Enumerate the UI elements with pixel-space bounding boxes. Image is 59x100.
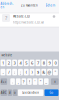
button[interactable]: ? [21, 78, 26, 85]
button[interactable]: 4 [18, 60, 23, 66]
button[interactable]: - [0, 69, 5, 75]
button[interactable]: ' [33, 78, 37, 85]
staticText: @ [48, 69, 52, 75]
staticText: x [54, 80, 55, 83]
button[interactable]: _ [44, 78, 49, 85]
staticText: ! [29, 79, 30, 84]
button[interactable]: . [10, 78, 15, 85]
staticText: Leerzeichen [22, 91, 39, 94]
button[interactable]: #+= [0, 78, 7, 85]
staticText: - [2, 69, 3, 75]
staticText: " [54, 69, 56, 75]
staticText: ? [5, 14, 7, 22]
staticText: $ [37, 69, 39, 75]
button[interactable]: ; [18, 69, 23, 75]
button[interactable]: o [13, 89, 17, 96]
button[interactable]: , [16, 78, 20, 85]
button[interactable]: Abbrechen [0, 2, 13, 8]
button[interactable]: Leerzeichen [18, 89, 43, 96]
button[interactable]: 1 [0, 60, 5, 66]
staticText: ; [20, 69, 21, 75]
button[interactable]: : [12, 69, 17, 75]
staticText: ( [26, 69, 27, 75]
staticText: , [18, 79, 19, 84]
staticText: Abbrechen [0, 2, 13, 9]
staticText: 7 [37, 60, 39, 65]
button[interactable]: 8 [41, 60, 46, 66]
staticText: website [1, 53, 12, 57]
staticText: _ [45, 79, 47, 84]
staticText: # [9, 91, 11, 94]
button[interactable]: 5 [24, 60, 29, 66]
button[interactable]: $ [35, 69, 40, 75]
staticText: Sichern [45, 4, 55, 7]
staticText: 3 [14, 60, 16, 65]
staticText: 9 [49, 60, 51, 65]
button[interactable]: ) [30, 69, 35, 75]
staticText: / [8, 69, 9, 75]
button[interactable]: ABC [0, 89, 7, 96]
button[interactable]: # [8, 89, 12, 96]
staticText: 4 [19, 60, 21, 65]
button[interactable]: & [41, 69, 46, 75]
staticText: ABC [1, 91, 7, 94]
button[interactable]: 0 [53, 60, 58, 66]
staticText: 1 [2, 60, 4, 65]
staticText: 2 [8, 60, 10, 65]
staticText: 8 [43, 60, 45, 65]
button[interactable]: Clear text [51, 14, 56, 19]
button[interactable]: @ [47, 69, 52, 75]
button[interactable]: ! [27, 78, 32, 85]
staticText: ? [23, 79, 25, 84]
button[interactable]: " [53, 69, 58, 75]
staticText: 5 [25, 60, 27, 65]
staticText: ' [35, 79, 36, 84]
button[interactable]: 6 [30, 60, 35, 66]
button[interactable]: Go [44, 89, 58, 96]
staticText: ) [32, 69, 33, 75]
staticText: Zu Favoriten [21, 4, 38, 7]
staticText: 0 [54, 60, 56, 65]
staticText: o [14, 91, 16, 94]
staticText: : [14, 69, 15, 75]
staticText: #+= [1, 80, 7, 83]
staticText: " [40, 79, 42, 84]
staticText: Website-CID [13, 15, 30, 18]
button[interactable]: x [51, 78, 59, 85]
staticText: & [42, 69, 45, 75]
staticText: Go [49, 91, 53, 94]
button[interactable]: 7 [35, 60, 40, 66]
button[interactable]: ( [24, 69, 29, 75]
staticText: 6 [31, 60, 33, 65]
button[interactable]: 2 [6, 60, 11, 66]
button[interactable]: Sichern [44, 2, 56, 8]
staticText: . [12, 79, 13, 84]
staticText: https://website-CID.xx/ [13, 21, 44, 24]
button[interactable]: " [38, 78, 43, 85]
button[interactable]: 3 [12, 60, 17, 66]
button[interactable]: / [6, 69, 11, 75]
button[interactable]: 9 [47, 60, 52, 66]
